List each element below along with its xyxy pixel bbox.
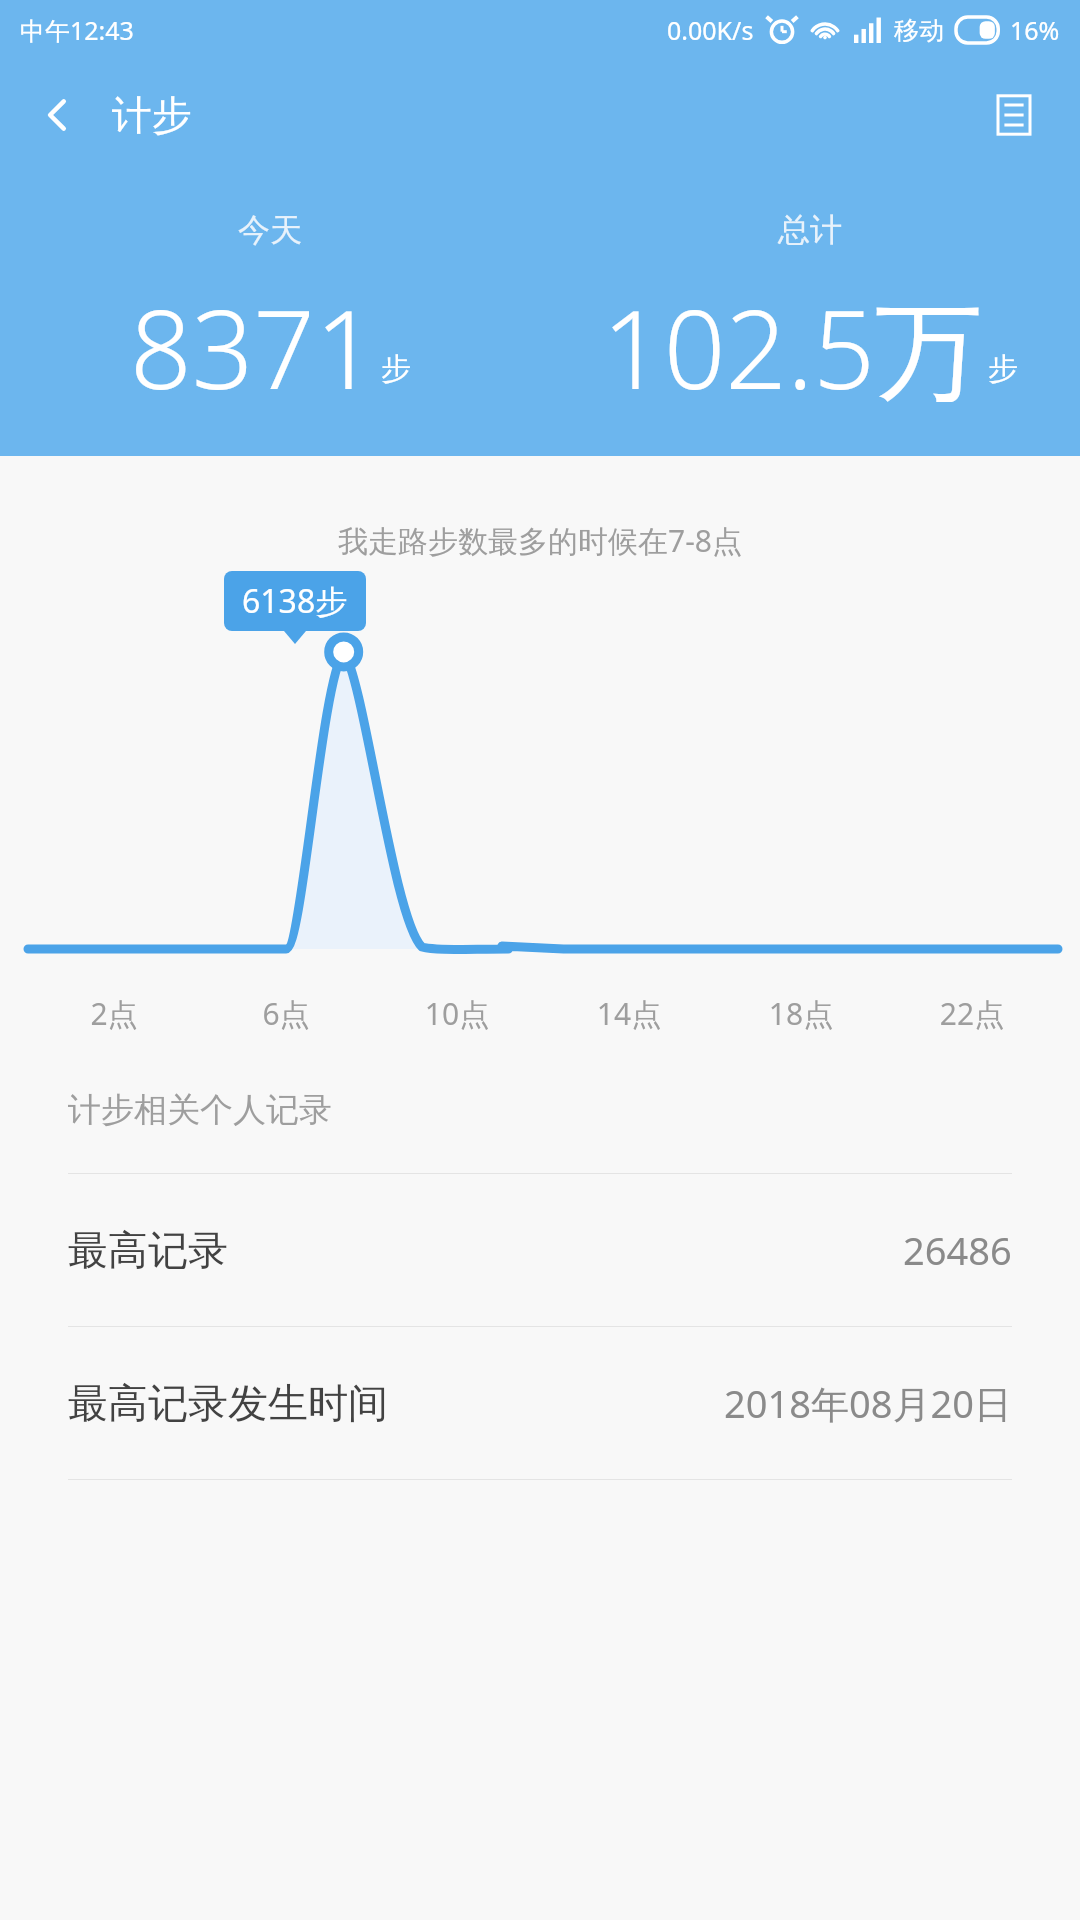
- button[interactable]: 最高记录: [0, 1174, 1080, 1326]
- staticText: 10点: [411, 993, 503, 1034]
- staticText: 0.00K/s: [667, 13, 754, 47]
- staticText: 18点: [755, 993, 847, 1034]
- staticText: 最高记录发生时间: [68, 1378, 388, 1428]
- button[interactable]: 最高记录发生时间: [0, 1327, 1080, 1479]
- staticText: 16%: [1010, 13, 1060, 47]
- staticText: 总计: [778, 210, 842, 250]
- staticText: 2018年08月20日: [724, 1377, 1012, 1429]
- staticText: 102.5万: [602, 274, 984, 402]
- staticText: 步: [988, 350, 1018, 388]
- staticText: 2点: [68, 993, 160, 1034]
- staticText: 移动: [894, 15, 944, 46]
- staticText: 我走路步数最多的时候在7-8点: [0, 520, 1080, 561]
- staticText: 步: [381, 350, 411, 388]
- staticText: 中午12:43: [20, 13, 134, 47]
- staticText: 8371: [130, 274, 377, 402]
- staticText: 最高记录: [68, 1225, 228, 1275]
- staticText: 计步相关个人记录: [68, 1089, 332, 1131]
- staticText: 今天: [238, 210, 302, 250]
- button[interactable]: Menu: [976, 77, 1052, 153]
- staticText: 26486: [903, 1224, 1012, 1276]
- staticText: 计步: [112, 90, 192, 140]
- staticText: 14点: [583, 993, 675, 1034]
- staticText: 22点: [926, 993, 1018, 1034]
- button[interactable]: Back: [22, 79, 94, 151]
- staticText: 6点: [240, 993, 332, 1034]
- staticText: 6138步: [242, 579, 348, 623]
